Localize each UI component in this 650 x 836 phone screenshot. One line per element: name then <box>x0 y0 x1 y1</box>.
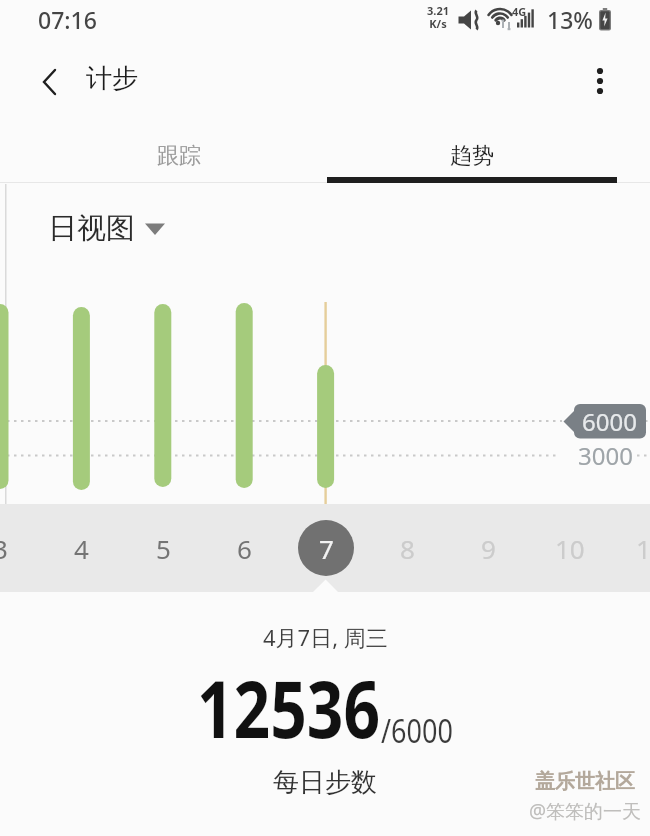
staticText: 9 <box>481 531 496 566</box>
button[interactable]: 跟踪 <box>32 131 325 181</box>
button[interactable]: 8 <box>367 520 447 576</box>
button[interactable]: 6 <box>204 520 284 576</box>
button[interactable]: 9 <box>448 520 528 576</box>
staticText: 7 <box>319 531 334 566</box>
button[interactable] <box>578 58 622 102</box>
staticText: 6000 <box>582 405 637 438</box>
staticText: 4 <box>74 531 89 566</box>
button[interactable]: 10 <box>530 520 610 576</box>
staticText: 3.21 K/s <box>427 3 449 31</box>
button[interactable]: 5 <box>123 520 203 576</box>
staticText: 计步 <box>86 62 138 95</box>
staticText: 跟踪 <box>157 142 201 170</box>
staticText: 12536 <box>197 655 381 761</box>
button[interactable]: 趋势 <box>325 131 618 181</box>
staticText: 每日步数 <box>273 766 377 799</box>
button[interactable]: 3 <box>0 520 40 576</box>
staticText: 日视图 <box>48 210 135 247</box>
staticText: 11 <box>636 531 650 566</box>
button[interactable]: 日视图 <box>48 210 166 247</box>
button[interactable]: 4 <box>41 520 121 576</box>
button[interactable]: 11 <box>611 520 650 576</box>
staticText: 盖乐世社区 <box>535 769 635 794</box>
staticText: 趋势 <box>450 142 494 170</box>
staticText: 6 <box>237 531 252 566</box>
staticText: @笨笨的一天 <box>529 798 642 824</box>
button[interactable] <box>28 60 72 104</box>
button[interactable]: 7 <box>298 520 354 576</box>
staticText: 8 <box>400 531 415 566</box>
staticText: 13% <box>547 4 593 35</box>
staticText: 4G <box>512 4 527 19</box>
staticText: 07:16 <box>38 4 97 35</box>
staticText: 3000 <box>578 439 633 472</box>
staticText: 3 <box>0 531 8 566</box>
staticText: 5 <box>156 531 171 566</box>
staticText: 4月7日, 周三 <box>263 622 388 652</box>
staticText: 10 <box>555 531 585 566</box>
staticText: /6000 <box>381 708 453 753</box>
